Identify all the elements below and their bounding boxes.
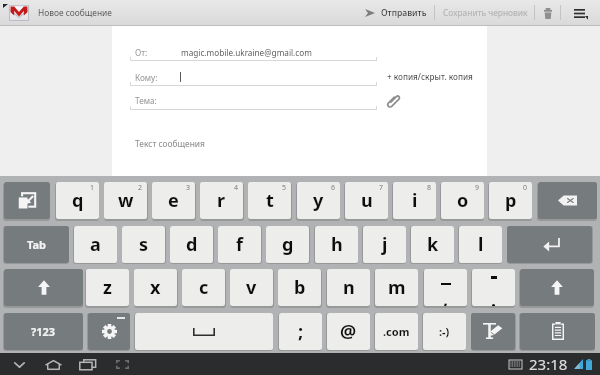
- staticText: t: [266, 188, 274, 213]
- staticText: 7: [379, 183, 384, 193]
- button[interactable]: Space: [135, 313, 273, 350]
- button[interactable]: u: [345, 182, 388, 219]
- button[interactable]: Attach file: [384, 93, 403, 108]
- staticText: r: [217, 188, 226, 213]
- staticText: :-): [439, 324, 450, 339]
- staticText: Tab: [27, 237, 47, 252]
- button[interactable]: w: [104, 182, 147, 219]
- button[interactable]: Home: [37, 354, 69, 375]
- button[interactable]: Delete: [535, 0, 560, 25]
- staticText: 5: [282, 183, 287, 193]
- button[interactable]: Новое сообщение: [2, 0, 112, 25]
- button[interactable]: Handwriting: [471, 313, 515, 350]
- button[interactable]: l: [459, 226, 502, 263]
- staticText: h: [331, 232, 343, 257]
- staticText: n: [343, 275, 355, 300]
- button[interactable]: Отправить: [360, 0, 432, 25]
- staticText: 9: [475, 183, 480, 193]
- staticText: f: [236, 232, 243, 257]
- button[interactable]: Shift: [520, 269, 594, 306]
- staticText: k: [427, 232, 439, 257]
- staticText: a: [90, 232, 101, 257]
- button[interactable]: q: [56, 182, 99, 219]
- button[interactable]: d: [170, 226, 213, 263]
- button[interactable]: a: [74, 226, 117, 263]
- staticText: g: [282, 232, 294, 257]
- staticText: o: [457, 188, 469, 213]
- button[interactable]: g: [266, 226, 309, 263]
- button[interactable]: h: [315, 226, 358, 263]
- button[interactable]: b: [278, 269, 321, 306]
- staticText: 6: [331, 183, 336, 193]
- button[interactable]: ;: [279, 313, 322, 350]
- staticText: @: [340, 319, 357, 344]
- button[interactable]: n: [327, 269, 370, 306]
- button[interactable]: j: [363, 226, 406, 263]
- button[interactable]: Tab: [4, 226, 69, 263]
- button[interactable]: + копия/скрыт. копия: [387, 71, 473, 82]
- button[interactable]: :-): [423, 313, 466, 350]
- staticText: x: [150, 275, 161, 300]
- button[interactable]: c: [182, 269, 225, 306]
- button[interactable]: p: [489, 182, 532, 219]
- button[interactable]: Hide keyboard: [106, 354, 138, 375]
- staticText: 8: [427, 183, 432, 193]
- staticText: y: [313, 188, 324, 213]
- button[interactable]: .com: [375, 313, 418, 350]
- button[interactable]: Settings: [88, 313, 130, 350]
- button[interactable]: e: [152, 182, 195, 219]
- staticText: e: [168, 188, 179, 213]
- button[interactable]: y: [297, 182, 340, 219]
- staticText: s: [139, 232, 149, 257]
- staticText: Отправить: [381, 7, 427, 19]
- staticText: u: [361, 188, 373, 213]
- button[interactable]: f: [218, 226, 261, 263]
- staticText: 2: [138, 183, 143, 193]
- button[interactable]: Resize keyboard: [4, 182, 50, 219]
- staticText: .: [491, 288, 497, 306]
- button[interactable]: .: [472, 269, 515, 306]
- button[interactable]: v: [230, 269, 273, 306]
- staticText: p: [505, 188, 517, 213]
- staticText: От:: [135, 47, 148, 58]
- staticText: 1: [90, 183, 95, 193]
- button[interactable]: t: [248, 182, 291, 219]
- button[interactable]: Shift: [4, 269, 83, 306]
- button[interactable]: x: [134, 269, 177, 306]
- staticText: ;: [298, 319, 304, 344]
- button[interactable]: Back: [3, 354, 35, 375]
- button[interactable]: s: [122, 226, 165, 263]
- staticText: d: [186, 232, 198, 257]
- staticText: b: [294, 275, 306, 300]
- staticText: m: [388, 275, 406, 300]
- button[interactable]: Enter: [507, 226, 592, 263]
- staticText: Новое сообщение: [38, 7, 112, 18]
- button[interactable]: r: [200, 182, 243, 219]
- staticText: q: [72, 188, 84, 213]
- staticText: c: [199, 275, 209, 300]
- button[interactable]: z: [86, 269, 129, 306]
- staticText: j: [382, 232, 388, 257]
- button[interactable]: m: [375, 269, 418, 306]
- button[interactable]: Clipboard: [520, 313, 595, 350]
- staticText: .com: [383, 324, 410, 339]
- staticText: z: [103, 275, 112, 300]
- button[interactable]: Сохранить черновик: [436, 0, 534, 25]
- staticText: Текст сообщения: [135, 138, 205, 149]
- button[interactable]: ,: [424, 269, 467, 306]
- button[interactable]: Recent apps: [71, 354, 103, 375]
- button[interactable]: i: [393, 182, 436, 219]
- button[interactable]: @: [327, 313, 370, 350]
- button[interactable]: o: [441, 182, 484, 219]
- staticText: 0: [523, 183, 528, 193]
- staticText: i: [412, 188, 418, 213]
- staticText: l: [478, 232, 484, 257]
- staticText: 23:18: [529, 354, 568, 374]
- button[interactable]: More options: [561, 0, 600, 25]
- staticText: Сохранить черновик: [443, 7, 528, 18]
- button[interactable]: Backspace: [538, 182, 597, 219]
- button[interactable]: k: [411, 226, 454, 263]
- staticText: ?123: [31, 324, 56, 339]
- button[interactable]: ?123: [4, 313, 83, 350]
- staticText: 3: [186, 183, 191, 193]
